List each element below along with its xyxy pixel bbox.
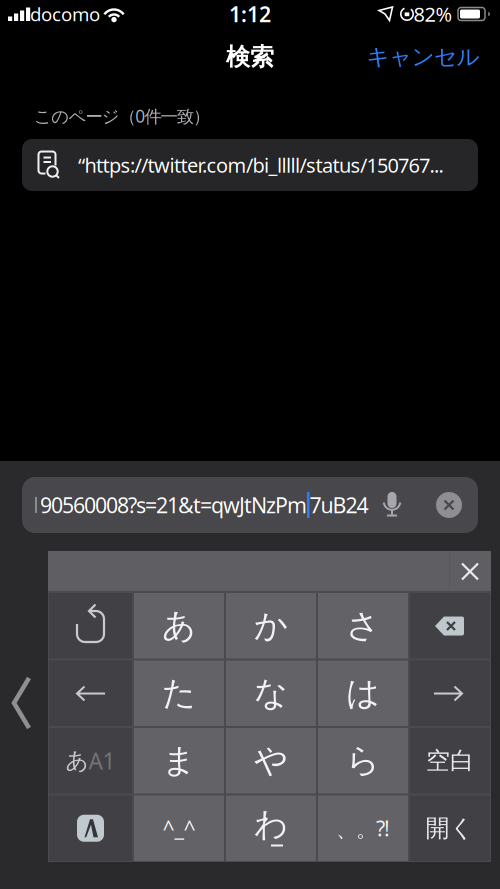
staticText: docomo: [30, 2, 100, 26]
staticText: や: [254, 740, 288, 781]
button[interactable]: さ: [318, 593, 408, 658]
button[interactable]: キーボードを左に広げる: [3, 675, 43, 731]
staticText: このページ（0件一致）: [34, 104, 210, 127]
staticText: さ: [346, 605, 380, 646]
button[interactable]: あ: [134, 593, 224, 658]
button[interactable]: カーソルを左へ: [49, 660, 132, 726]
staticText: “https://twitter.com/bi_lllll/status/150…: [78, 152, 443, 178]
staticText: 1:12: [229, 0, 271, 28]
staticText: 検索: [226, 42, 274, 72]
button[interactable]: た: [134, 660, 224, 726]
button[interactable]: わ: [226, 795, 316, 861]
button[interactable]: あ: [49, 728, 132, 793]
button[interactable]: な: [226, 660, 316, 726]
button[interactable]: キャンセル: [348, 35, 498, 79]
staticText: あ: [162, 605, 196, 646]
staticText: ま: [162, 740, 196, 781]
button[interactable]: 元に戻す: [49, 593, 132, 658]
staticText: 90560008?s=21&t=qwJtNzPm: [40, 491, 307, 519]
staticText: あ: [65, 747, 88, 775]
staticText: 開く: [425, 813, 474, 843]
button[interactable]: キーボードを閉じる: [450, 552, 490, 591]
button[interactable]: か: [226, 593, 316, 658]
staticText: わ: [254, 804, 288, 845]
staticText: か: [254, 605, 288, 646]
staticText: 、。?!: [336, 814, 390, 842]
button[interactable]: クリア: [436, 492, 462, 518]
button[interactable]: 、。?!: [318, 795, 408, 861]
button[interactable]: ら: [318, 728, 408, 793]
button[interactable]: 次のキーボード: [49, 795, 132, 861]
staticText: な: [254, 673, 288, 714]
button[interactable]: 空白: [410, 728, 490, 793]
button[interactable]: は: [318, 660, 408, 726]
button[interactable]: ^_^: [134, 795, 224, 861]
button[interactable]: 削除: [410, 593, 490, 658]
button[interactable]: “https://twitter.com/bi_lllll/status/150…: [22, 139, 478, 191]
staticText: 空白: [426, 746, 474, 775]
button[interactable]: 開く: [410, 795, 490, 861]
button[interactable]: や: [226, 728, 316, 793]
button[interactable]: ま: [134, 728, 224, 793]
staticText: 7uB24: [309, 491, 368, 519]
staticText: ^_^: [162, 814, 195, 842]
staticText: 82%: [413, 1, 452, 27]
staticText: キャンセル: [366, 43, 479, 71]
button[interactable]: 90560008?s=21&t=qwJtNzPm: [22, 477, 478, 533]
staticText: た: [162, 673, 196, 714]
staticText: は: [346, 673, 380, 714]
button[interactable]: カーソルを右へ: [410, 660, 490, 726]
button[interactable]: 音声入力: [380, 491, 404, 519]
staticText: ら: [346, 740, 380, 781]
staticText: A1: [88, 746, 115, 776]
